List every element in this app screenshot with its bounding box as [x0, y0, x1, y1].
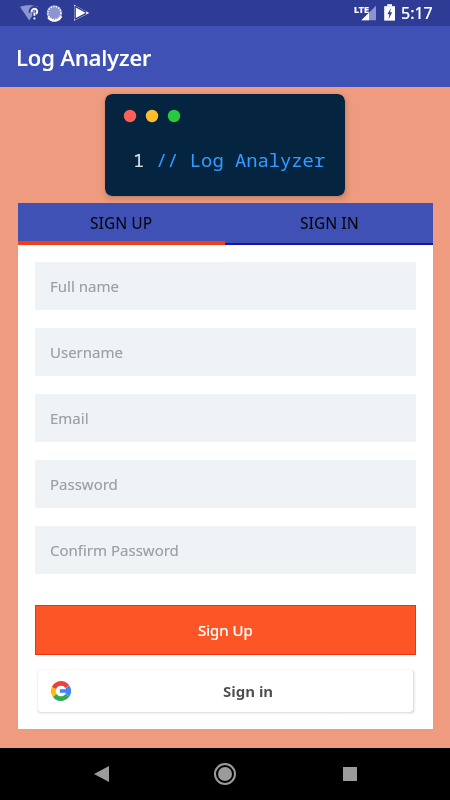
button[interactable]: SIGN UP: [18, 203, 225, 241]
staticText: Sign in: [223, 681, 274, 701]
staticText: SIGN IN: [300, 212, 359, 233]
staticText: Confirm Password: [50, 540, 179, 560]
button[interactable]: Recent apps: [326, 750, 374, 798]
staticText: Password: [50, 474, 118, 494]
button[interactable]: Confirm Password: [35, 526, 416, 574]
button[interactable]: SIGN IN: [225, 203, 433, 241]
button[interactable]: Back: [77, 750, 125, 798]
staticText: Username: [50, 342, 123, 362]
button[interactable]: Username: [35, 328, 416, 376]
staticText: SIGN UP: [90, 212, 153, 233]
button[interactable]: Sign Up: [36, 606, 415, 654]
button[interactable]: Password: [35, 460, 416, 508]
staticText: // Log Analyzer: [156, 147, 326, 173]
staticText: LTE: [354, 3, 370, 15]
staticText: Full name: [50, 276, 119, 296]
button[interactable]: Email: [35, 394, 416, 442]
button[interactable]: Full name: [35, 262, 416, 310]
button[interactable]: Home: [201, 750, 249, 798]
staticText: 5:17: [401, 2, 433, 24]
staticText: 1: [133, 147, 156, 173]
button[interactable]: Sign in: [38, 670, 413, 712]
staticText: Log Analyzer: [16, 42, 152, 72]
staticText: Sign Up: [198, 620, 253, 640]
staticText: Email: [50, 408, 89, 428]
